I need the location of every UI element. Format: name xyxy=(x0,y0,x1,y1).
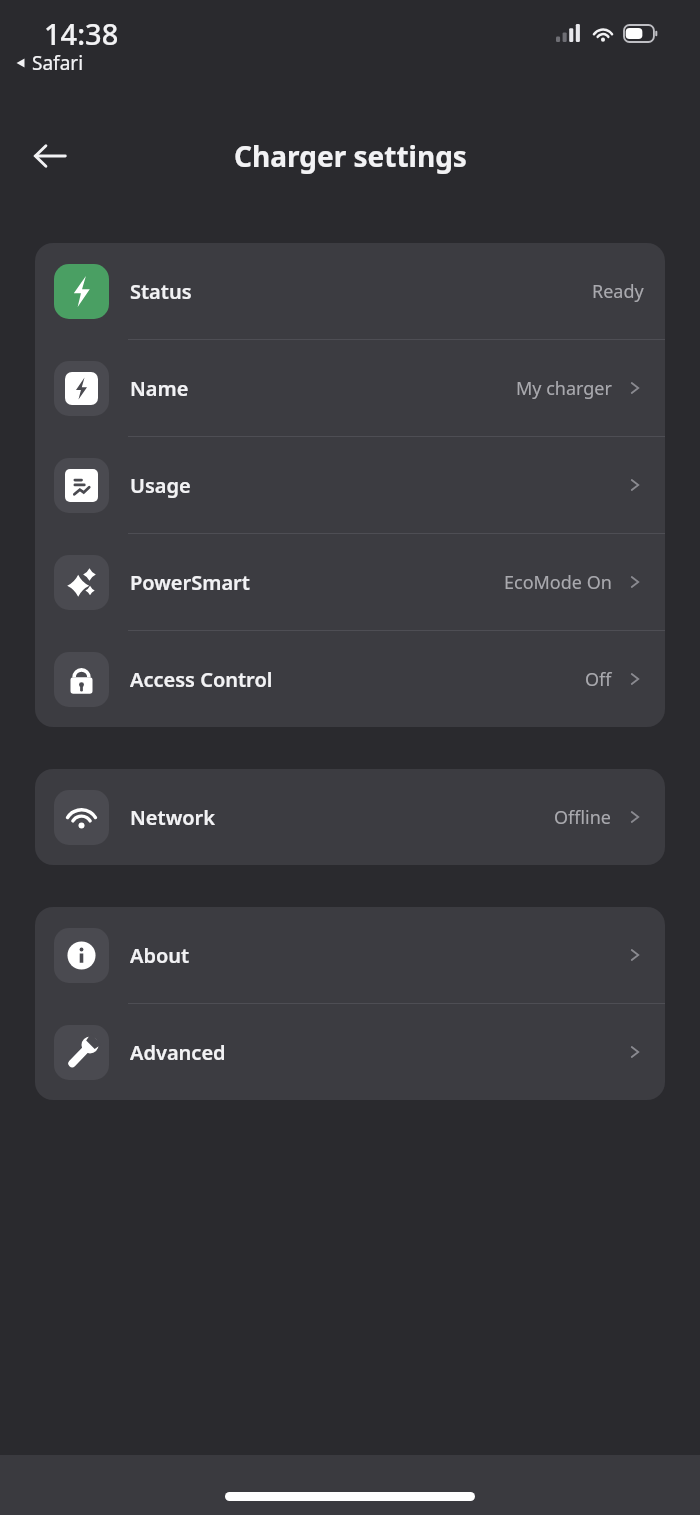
staticText: EcoMode On xyxy=(504,570,612,595)
button[interactable]: Access Control xyxy=(35,631,665,727)
button[interactable]: Network xyxy=(35,769,665,865)
staticText: Access Control xyxy=(130,666,273,693)
staticText: Advanced xyxy=(130,1039,226,1066)
staticText: Offline xyxy=(554,805,612,830)
button[interactable]: Back xyxy=(22,128,78,184)
staticText: Name xyxy=(130,375,189,402)
staticText: Usage xyxy=(130,472,191,499)
staticText: 14:38 xyxy=(44,14,119,53)
staticText: Charger settings xyxy=(234,137,467,175)
staticText: Ready xyxy=(592,279,644,304)
button[interactable]: Advanced xyxy=(35,1004,665,1100)
staticText: Network xyxy=(130,804,216,831)
button[interactable]: Name xyxy=(35,340,665,437)
button[interactable]: Status xyxy=(35,243,665,340)
staticText: Safari xyxy=(32,50,84,76)
button[interactable]: About xyxy=(35,907,665,1004)
staticText: PowerSmart xyxy=(130,569,250,596)
button[interactable]: Usage xyxy=(35,437,665,534)
button[interactable]: PowerSmart xyxy=(35,534,665,631)
staticText: Off xyxy=(585,667,612,692)
staticText: About xyxy=(130,942,190,969)
staticText: Status xyxy=(130,278,192,305)
staticText: My charger xyxy=(516,376,612,401)
